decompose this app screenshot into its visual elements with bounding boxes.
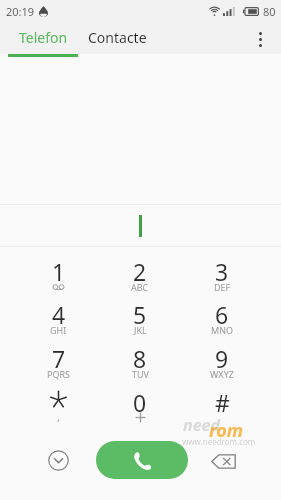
button[interactable]: 2 xyxy=(99,247,181,292)
button[interactable]: # xyxy=(181,384,263,430)
button[interactable]: Contacte xyxy=(82,22,152,54)
staticText: # xyxy=(215,387,230,418)
staticText: TUV xyxy=(132,368,149,380)
button[interactable]: 9 xyxy=(181,338,263,384)
button[interactable]: 5 xyxy=(99,292,181,338)
staticText: Telefon xyxy=(19,28,68,47)
staticText: www.needrom.com xyxy=(182,436,256,447)
staticText: rom xyxy=(209,418,244,443)
staticText: 7 xyxy=(52,343,66,374)
staticText: 2 xyxy=(133,256,147,287)
staticText: 8 xyxy=(133,343,147,374)
staticText: WXYZ xyxy=(210,368,234,380)
button[interactable]: Telefon xyxy=(8,22,78,54)
button[interactable]: 8 xyxy=(99,338,181,384)
staticText: 9 xyxy=(215,343,229,374)
button[interactable]: 3 xyxy=(181,247,263,292)
staticText: 1 xyxy=(52,256,66,287)
button[interactable]: 6 xyxy=(181,292,263,338)
staticText: 80 xyxy=(263,4,276,19)
staticText: JKL xyxy=(134,324,147,336)
staticText: PQRS xyxy=(47,368,71,380)
staticText: 5 xyxy=(133,299,147,330)
staticText: MNO xyxy=(211,324,234,336)
staticText: 3 xyxy=(215,256,229,287)
button[interactable]: , xyxy=(18,384,99,430)
button[interactable]: More options xyxy=(240,22,280,54)
staticText: 20:19 xyxy=(6,4,35,19)
button[interactable]: Hide keypad xyxy=(36,438,80,482)
staticText: GHI xyxy=(50,324,67,336)
button[interactable]: 7 xyxy=(18,338,99,384)
staticText: Contacte xyxy=(88,28,147,47)
button[interactable]: 4 xyxy=(18,292,99,338)
staticText: DEF xyxy=(214,281,231,293)
staticText: ABC xyxy=(131,281,149,293)
button[interactable]: 0 xyxy=(99,384,181,430)
button[interactable]: 1 xyxy=(18,247,99,292)
staticText: , xyxy=(57,410,60,424)
staticText: 6 xyxy=(215,299,229,330)
staticText: 4 xyxy=(52,299,66,330)
staticText: 0 xyxy=(133,387,147,418)
button[interactable]: Call xyxy=(96,441,188,479)
button[interactable]: Delete xyxy=(201,439,245,483)
staticText: need xyxy=(183,414,220,436)
